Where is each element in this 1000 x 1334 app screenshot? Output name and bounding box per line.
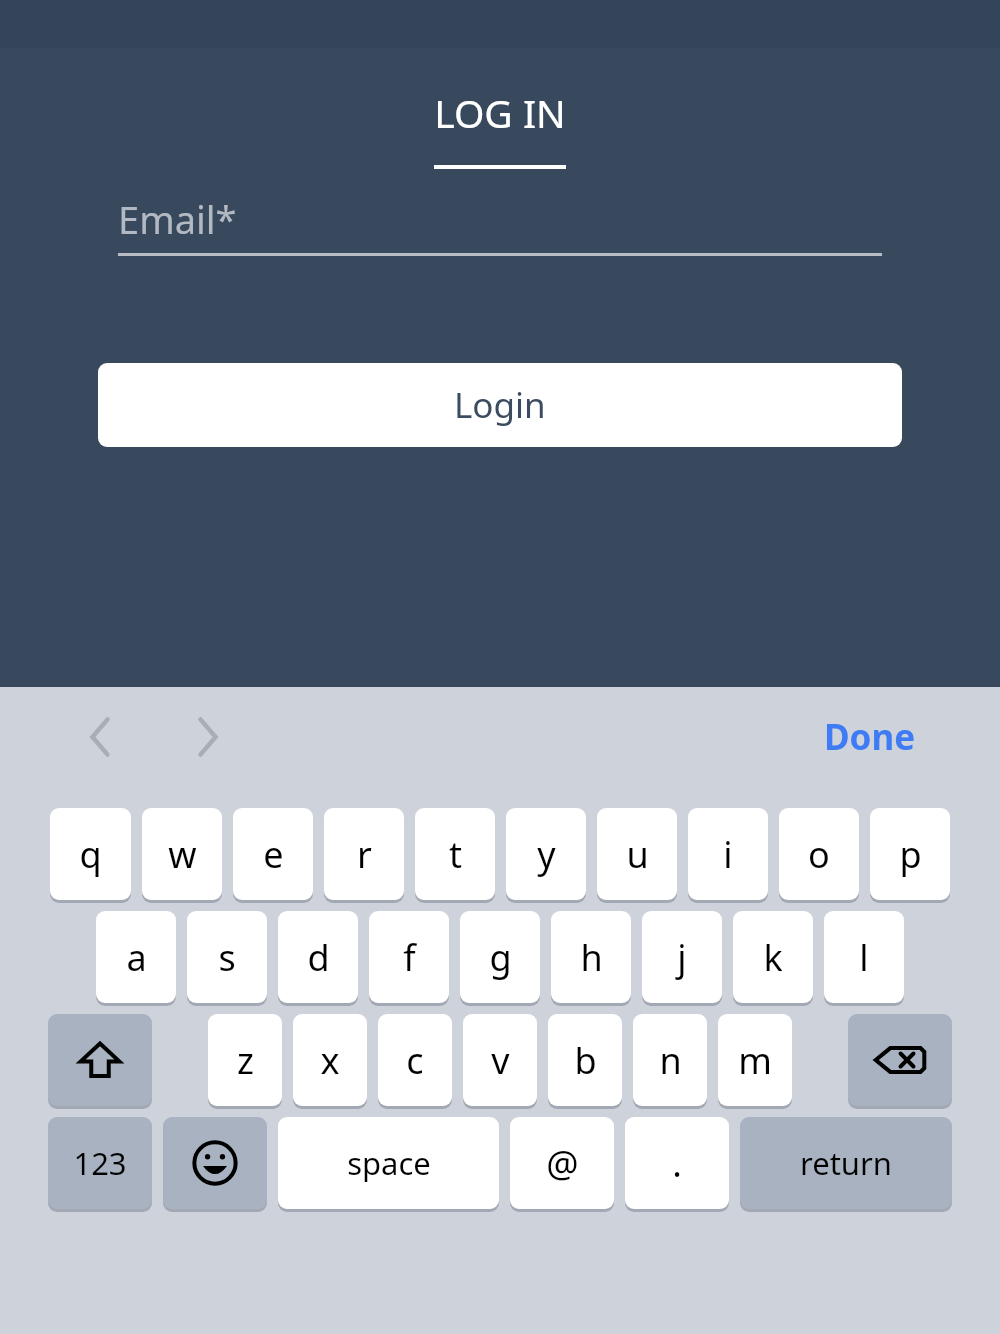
staticText: . xyxy=(672,1139,682,1188)
button[interactable]: t xyxy=(415,808,495,900)
button[interactable]: c xyxy=(378,1014,452,1106)
button[interactable]: e xyxy=(233,808,313,900)
staticText: j xyxy=(677,933,687,982)
staticText: i xyxy=(723,830,733,879)
button[interactable]: Done xyxy=(814,703,926,771)
staticText: p xyxy=(899,830,922,879)
staticText: k xyxy=(763,933,783,982)
button[interactable]: p xyxy=(870,808,950,900)
staticText: z xyxy=(237,1036,254,1085)
button[interactable]: 123 xyxy=(48,1117,152,1209)
staticText: Done xyxy=(824,713,916,761)
button[interactable]: q xyxy=(50,808,131,900)
button[interactable]: u xyxy=(597,808,677,900)
button[interactable]: z xyxy=(208,1014,282,1106)
button[interactable]: g xyxy=(460,911,540,1003)
staticText: l xyxy=(859,933,869,982)
button[interactable]: space xyxy=(278,1117,499,1209)
button[interactable]: Previous field xyxy=(72,709,128,765)
button[interactable]: Next field xyxy=(180,709,236,765)
button[interactable]: m xyxy=(718,1014,792,1106)
button[interactable]: l xyxy=(824,911,904,1003)
button[interactable]: Shift xyxy=(48,1014,152,1106)
staticText: m xyxy=(738,1036,772,1085)
staticText: return xyxy=(800,1142,892,1184)
button[interactable]: w xyxy=(142,808,222,900)
staticText: Login xyxy=(454,381,546,429)
button[interactable]: b xyxy=(548,1014,622,1106)
button[interactable]: x xyxy=(293,1014,367,1106)
staticText: Email* xyxy=(118,193,882,245)
button[interactable]: Email* xyxy=(118,193,882,256)
staticText: d xyxy=(307,933,330,982)
button[interactable]: k xyxy=(733,911,813,1003)
staticText: s xyxy=(218,933,236,982)
staticText: LOG IN xyxy=(0,86,1000,139)
button[interactable]: Login xyxy=(98,363,902,447)
button[interactable]: @ xyxy=(510,1117,614,1209)
button[interactable]: f xyxy=(369,911,449,1003)
staticText: u xyxy=(626,830,649,879)
staticText: w xyxy=(168,830,197,879)
staticText: t xyxy=(449,830,462,879)
button[interactable]: o xyxy=(779,808,859,900)
staticText: b xyxy=(574,1036,597,1085)
staticText: e xyxy=(263,830,284,879)
button[interactable]: Emoji xyxy=(163,1117,267,1209)
staticText: x xyxy=(320,1036,340,1085)
staticText: r xyxy=(357,830,372,879)
button[interactable]: return xyxy=(740,1117,952,1209)
staticText: c xyxy=(406,1036,424,1085)
staticText: space xyxy=(347,1142,431,1184)
staticText: f xyxy=(403,933,416,982)
button[interactable]: s xyxy=(187,911,267,1003)
button[interactable]: n xyxy=(633,1014,707,1106)
staticText: n xyxy=(659,1036,682,1085)
button[interactable]: j xyxy=(642,911,722,1003)
button[interactable]: h xyxy=(551,911,631,1003)
button[interactable]: d xyxy=(278,911,358,1003)
button[interactable]: . xyxy=(625,1117,729,1209)
staticText: q xyxy=(79,830,102,879)
button[interactable]: a xyxy=(96,911,176,1003)
staticText: g xyxy=(489,933,512,982)
staticText: y xyxy=(537,830,556,879)
staticText: h xyxy=(580,933,603,982)
staticText: o xyxy=(808,830,830,879)
staticText: a xyxy=(126,933,147,982)
button[interactable]: Backspace xyxy=(848,1014,952,1106)
button[interactable]: v xyxy=(463,1014,537,1106)
button[interactable]: i xyxy=(688,808,768,900)
button[interactable]: y xyxy=(506,808,586,900)
button[interactable]: r xyxy=(324,808,404,900)
staticText: @ xyxy=(546,1139,579,1188)
staticText: v xyxy=(491,1036,510,1085)
staticText: 123 xyxy=(73,1142,127,1184)
